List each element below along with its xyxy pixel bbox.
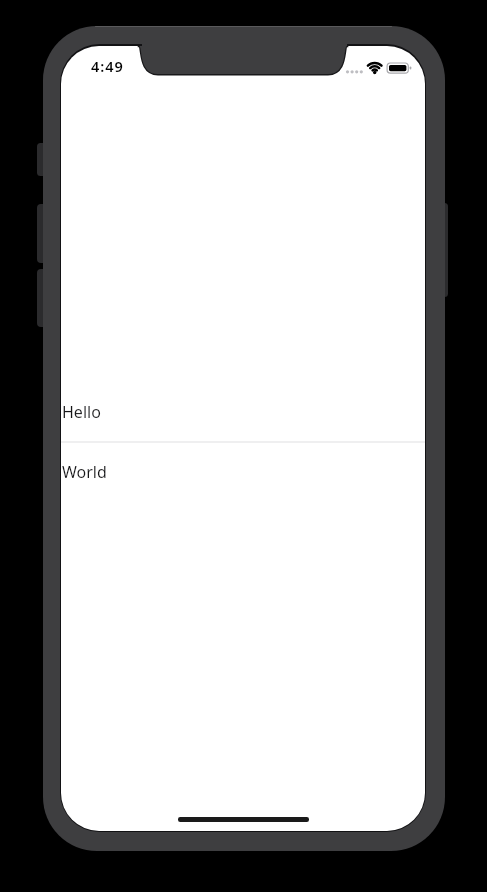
staticText: 4:49 (91, 56, 124, 76)
button[interactable]: World (61, 443, 425, 501)
button[interactable]: Hello (61, 383, 425, 441)
staticText: Hello (62, 401, 101, 423)
staticText: World (62, 461, 107, 483)
